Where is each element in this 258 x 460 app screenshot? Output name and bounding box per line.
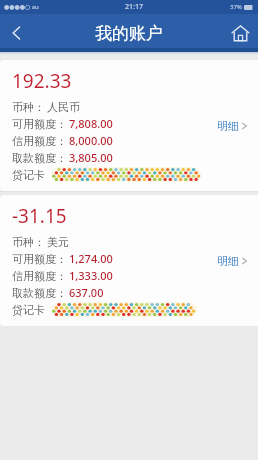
staticText: 币种： [12, 235, 45, 249]
staticText: 美元 [47, 235, 69, 249]
button[interactable]: 首页 [222, 15, 258, 51]
staticText: 贷记卡 [12, 303, 45, 317]
staticText: 192.33 [12, 68, 72, 94]
staticText: 信用额度： [12, 134, 67, 148]
staticText: 21:17 [125, 2, 143, 12]
staticText: 我的账户 [95, 23, 163, 44]
staticText: 可用额度： [12, 252, 67, 266]
staticText: -31.15 [12, 203, 67, 229]
staticText: 明细 [217, 119, 239, 133]
button[interactable]: 返回 [0, 16, 34, 50]
staticText: ●●●●○ au [4, 3, 39, 11]
button[interactable]: -31.15 [0, 195, 258, 326]
staticText: 取款额度： [12, 286, 67, 300]
staticText: 可用额度： [12, 117, 67, 131]
staticText: 币种： [12, 100, 45, 114]
staticText: 8,000.00 [69, 133, 113, 148]
button[interactable]: 明细 [213, 251, 252, 271]
staticText: 1,333.00 [69, 268, 113, 283]
staticText: 信用额度： [12, 269, 67, 283]
staticText: 7,808.00 [69, 116, 113, 131]
button[interactable]: 192.33 [0, 60, 258, 191]
staticText: 1,274.00 [69, 251, 113, 266]
button[interactable]: 明细 [213, 116, 252, 136]
staticText: 取款额度： [12, 151, 67, 165]
staticText: 明细 [217, 254, 239, 268]
staticText: 37% [230, 3, 242, 11]
staticText: 人民币 [47, 100, 80, 114]
staticText: 贷记卡 [12, 168, 45, 182]
staticText: 637.00 [69, 285, 104, 300]
staticText: 3,805.00 [69, 150, 113, 165]
